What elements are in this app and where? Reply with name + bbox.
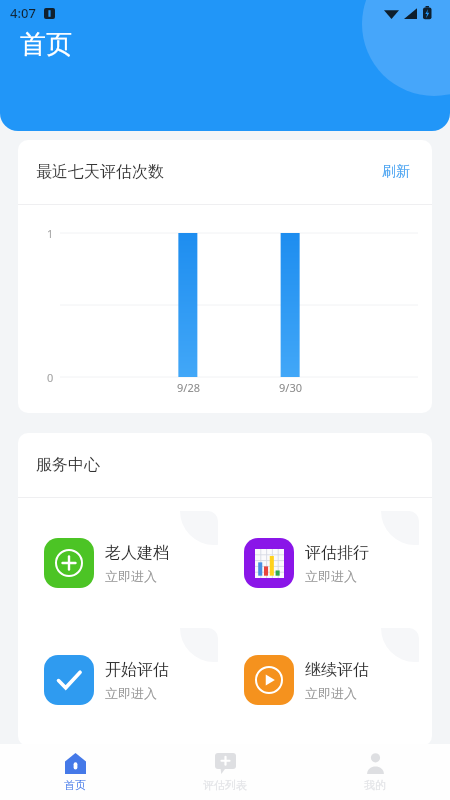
staticText: 9/30 [279, 380, 302, 395]
button[interactable]: 开始评估 [31, 628, 218, 732]
button[interactable]: 老人建档 [31, 511, 218, 615]
staticText: 0 [47, 370, 54, 385]
button[interactable]: 评估列表 [150, 744, 300, 800]
staticText: 4:07 [10, 4, 36, 22]
staticText: 老人建档 [105, 543, 169, 563]
staticText: 评估排行 [305, 543, 369, 563]
staticText: 首页 [20, 28, 72, 61]
staticText: 刷新 [382, 163, 410, 181]
staticText: 服务中心 [36, 455, 100, 475]
staticText: 立即进入 [305, 568, 357, 584]
staticText: 继续评估 [305, 660, 369, 680]
button[interactable]: 首页 [0, 744, 150, 800]
staticText: 评估列表 [203, 778, 247, 792]
staticText: 首页 [64, 778, 86, 792]
staticText: 我的 [364, 778, 386, 792]
staticText: 立即进入 [305, 685, 357, 701]
staticText: 立即进入 [105, 685, 157, 701]
staticText: 立即进入 [105, 568, 157, 584]
button[interactable]: 继续评估 [231, 628, 419, 732]
staticText: 9/28 [177, 380, 200, 395]
button[interactable]: 评估排行 [231, 511, 419, 615]
staticText: 1 [47, 226, 54, 241]
staticText: 开始评估 [105, 660, 169, 680]
button[interactable]: 刷新 [378, 159, 414, 185]
button[interactable]: 我的 [300, 744, 450, 800]
staticText: 最近七天评估次数 [36, 162, 164, 182]
